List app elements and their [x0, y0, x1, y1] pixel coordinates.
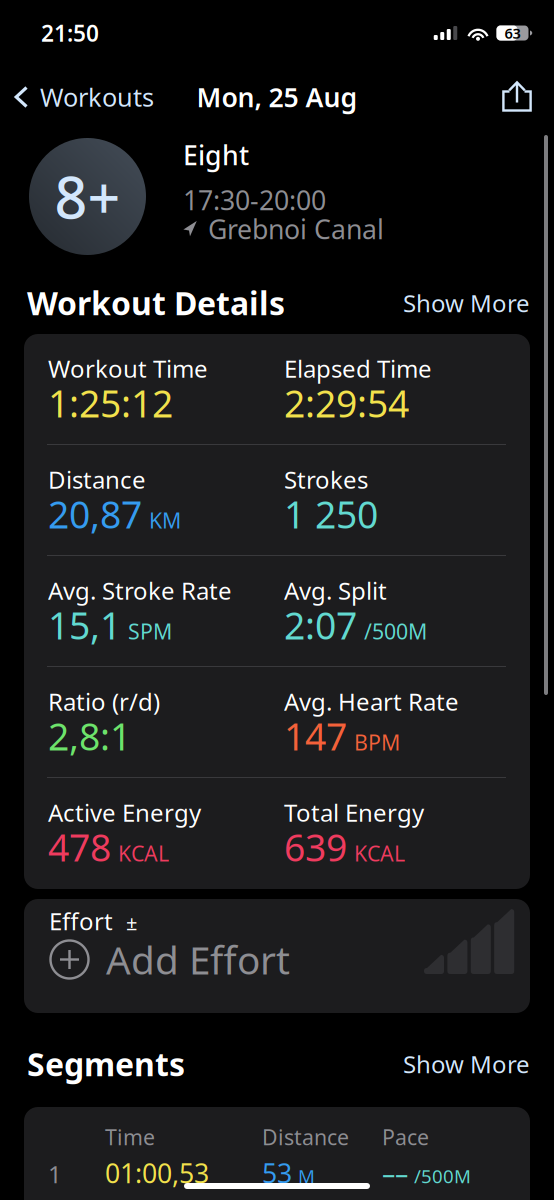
staticText: Effort — [49, 905, 113, 937]
staticText: Show More — [403, 1048, 530, 1080]
staticText: Avg. Stroke Rate — [48, 575, 232, 606]
staticText: 63 — [504, 23, 520, 43]
staticText: Workout Time — [48, 353, 208, 384]
staticText: 2:29:54 — [284, 378, 409, 428]
staticText: Time — [105, 1123, 155, 1151]
staticText: Distance — [48, 464, 146, 495]
staticText: BPM — [354, 728, 400, 756]
staticText: KCAL — [354, 839, 405, 867]
button[interactable]: Show More — [383, 1040, 530, 1088]
button[interactable]: Effort — [0, 889, 554, 1013]
staticText: 20,87 — [48, 489, 142, 539]
staticText: Total Energy — [284, 797, 424, 828]
staticText: 147 — [284, 711, 347, 761]
staticText: Add Effort — [106, 934, 290, 985]
staticText: 1 250 — [284, 489, 378, 539]
staticText: Distance — [262, 1123, 349, 1151]
staticText: Avg. Split — [284, 575, 387, 606]
staticText: 53 — [262, 1155, 292, 1191]
staticText: 8+ — [54, 158, 120, 234]
staticText: Grebnoi Canal — [208, 211, 384, 247]
staticText: Active Energy — [48, 797, 201, 828]
staticText: Eight — [183, 137, 249, 173]
staticText: 2:07 — [284, 600, 357, 650]
staticText: Pace — [382, 1123, 429, 1151]
staticText: 478 — [48, 822, 111, 872]
staticText: Strokes — [284, 464, 368, 495]
staticText: Ratio (r/d) — [48, 686, 160, 717]
button[interactable]: Show More — [383, 279, 530, 327]
staticText: 639 — [284, 822, 347, 872]
staticText: 1:25:12 — [48, 378, 173, 428]
staticText: 17:30-20:00 — [183, 182, 326, 218]
staticText: Segments — [27, 1043, 185, 1085]
staticText: Show More — [403, 287, 530, 319]
staticText: KM — [149, 506, 181, 534]
staticText: Mon, 25 Aug — [196, 79, 357, 115]
staticText: –– — [382, 1155, 408, 1191]
staticText: 1 — [48, 1158, 62, 1190]
staticText: /500M — [414, 1164, 471, 1188]
staticText: 01:00,53 — [105, 1155, 209, 1191]
button[interactable]: Share — [500, 75, 554, 119]
staticText: SPM — [128, 617, 172, 645]
staticText: Workouts — [40, 80, 154, 114]
staticText: Workout Details — [27, 282, 285, 324]
staticText: 2,8:1 — [48, 711, 131, 761]
staticText: Elapsed Time — [284, 353, 432, 384]
button[interactable]: Workouts — [0, 72, 154, 122]
staticText: M — [298, 1164, 315, 1188]
staticText: Avg. Heart Rate — [284, 686, 459, 717]
staticText: 21:50 — [41, 18, 99, 48]
staticText: 15,1 — [48, 600, 121, 650]
staticText: /500M — [364, 617, 427, 645]
staticText: KCAL — [118, 839, 169, 867]
staticText: ± — [126, 909, 137, 936]
